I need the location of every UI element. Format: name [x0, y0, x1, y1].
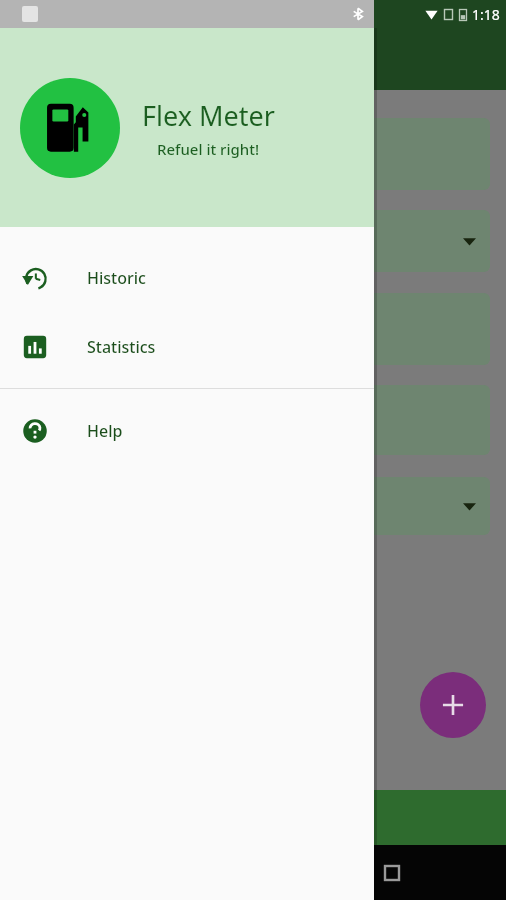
button[interactable] [16, 385, 490, 455]
button[interactable]: Add refuel [420, 672, 486, 738]
staticText: Historic [87, 267, 146, 289]
staticText: Refuel it right! [157, 139, 260, 159]
button[interactable] [16, 293, 490, 365]
button[interactable]: Help [0, 396, 374, 465]
staticText: Flex Meter [142, 97, 275, 134]
button[interactable]: Statistics [0, 312, 374, 381]
button[interactable]: Recents [368, 849, 416, 897]
button[interactable] [16, 118, 490, 190]
staticText: Statistics [87, 336, 156, 358]
button[interactable]: Historic [0, 243, 374, 312]
staticText: Help [87, 420, 123, 442]
button[interactable] [16, 477, 490, 535]
button[interactable] [16, 210, 490, 272]
staticText: 1:18 [472, 5, 500, 24]
